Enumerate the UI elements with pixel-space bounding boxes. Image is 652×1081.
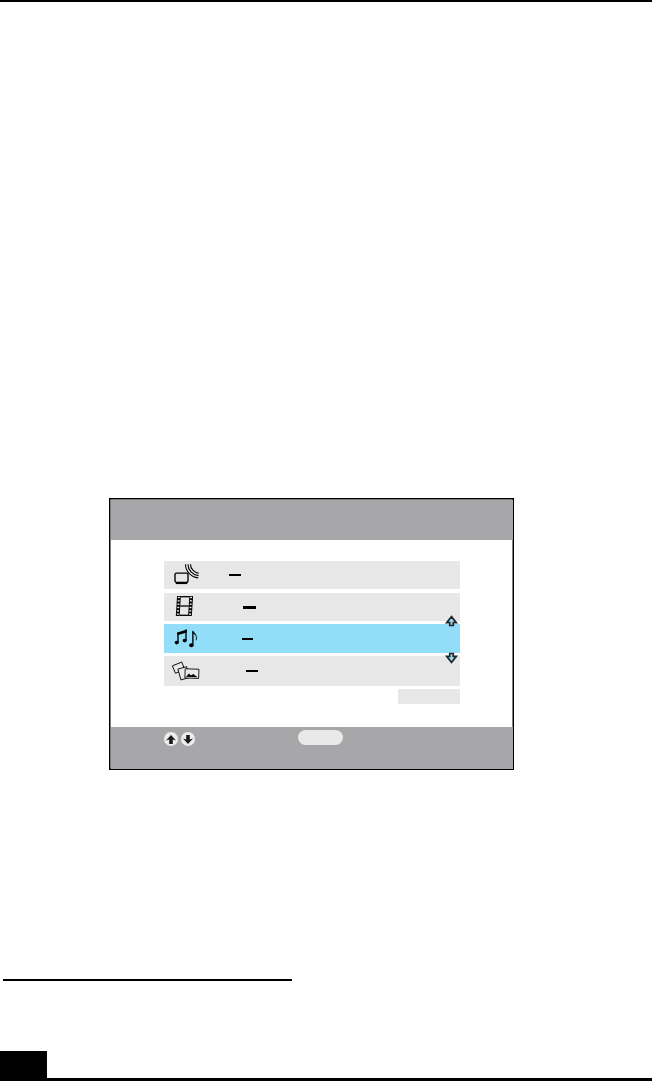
- button[interactable]: Scroll up: [164, 732, 178, 746]
- button[interactable]: Move selection down: [446, 653, 457, 663]
- button[interactable]: [164, 593, 460, 621]
- button[interactable]: [164, 656, 460, 686]
- button[interactable]: Scroll down: [181, 732, 195, 746]
- button[interactable]: [164, 624, 460, 653]
- button[interactable]: Action button: [298, 730, 343, 745]
- button[interactable]: [164, 561, 460, 589]
- button[interactable]: Move selection up: [446, 616, 457, 626]
